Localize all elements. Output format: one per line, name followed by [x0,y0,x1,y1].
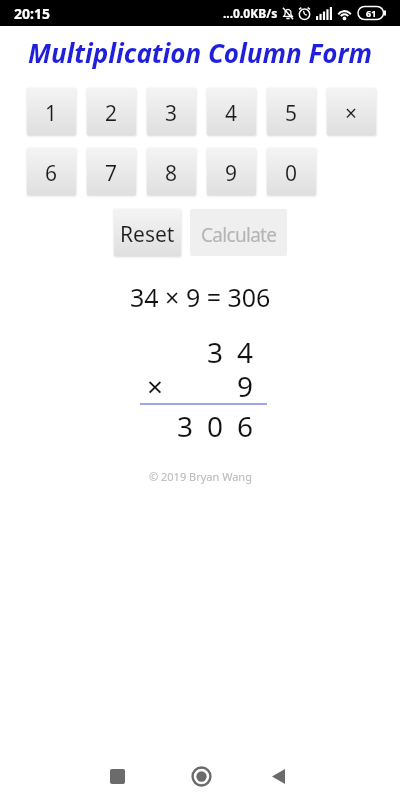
button[interactable]: Calculate [190,209,287,256]
staticText: × [147,367,164,401]
staticText: © 2019 Bryan Wang [149,469,252,484]
button[interactable]: 3 [147,88,196,135]
staticText: 2 [105,99,118,128]
button[interactable]: 5 [267,88,316,135]
staticText: 20:15 [14,4,50,23]
staticText: 0 [207,407,224,441]
staticText: 6 [237,407,254,441]
staticText: 7 [105,159,118,188]
staticText: 3 [207,333,224,367]
button[interactable]: 6 [27,148,76,195]
staticText: Reset [120,220,175,249]
staticText: × [345,99,358,128]
button[interactable] [257,755,299,797]
staticText: 61 [366,7,377,19]
staticText: 9 [237,367,254,401]
staticText: 0 [285,159,298,188]
button[interactable]: 9 [207,148,256,195]
button[interactable]: 0 [267,148,316,195]
button[interactable]: 7 [87,148,136,195]
staticText: 4 [237,333,254,367]
button[interactable] [180,755,222,797]
staticText: 3 [177,407,194,441]
button[interactable] [96,755,138,797]
staticText: Multiplication Column Form [28,35,373,70]
button[interactable]: 4 [207,88,256,135]
button[interactable]: × [327,88,376,135]
button[interactable]: 1 [27,88,76,135]
staticText: Calculate [201,222,277,248]
staticText: 9 [225,159,238,188]
staticText: 8 [165,159,178,188]
staticText: 5 [285,99,298,128]
staticText: 6 [45,159,58,188]
staticText: ...0.0KB/s [223,5,278,21]
button[interactable]: Reset [114,209,181,256]
staticText: 4 [225,99,238,128]
staticText: 34 × 9 = 306 [130,280,271,314]
button[interactable]: 8 [147,148,196,195]
staticText: 3 [165,99,178,128]
button[interactable]: 2 [87,88,136,135]
staticText: 1 [45,99,58,128]
